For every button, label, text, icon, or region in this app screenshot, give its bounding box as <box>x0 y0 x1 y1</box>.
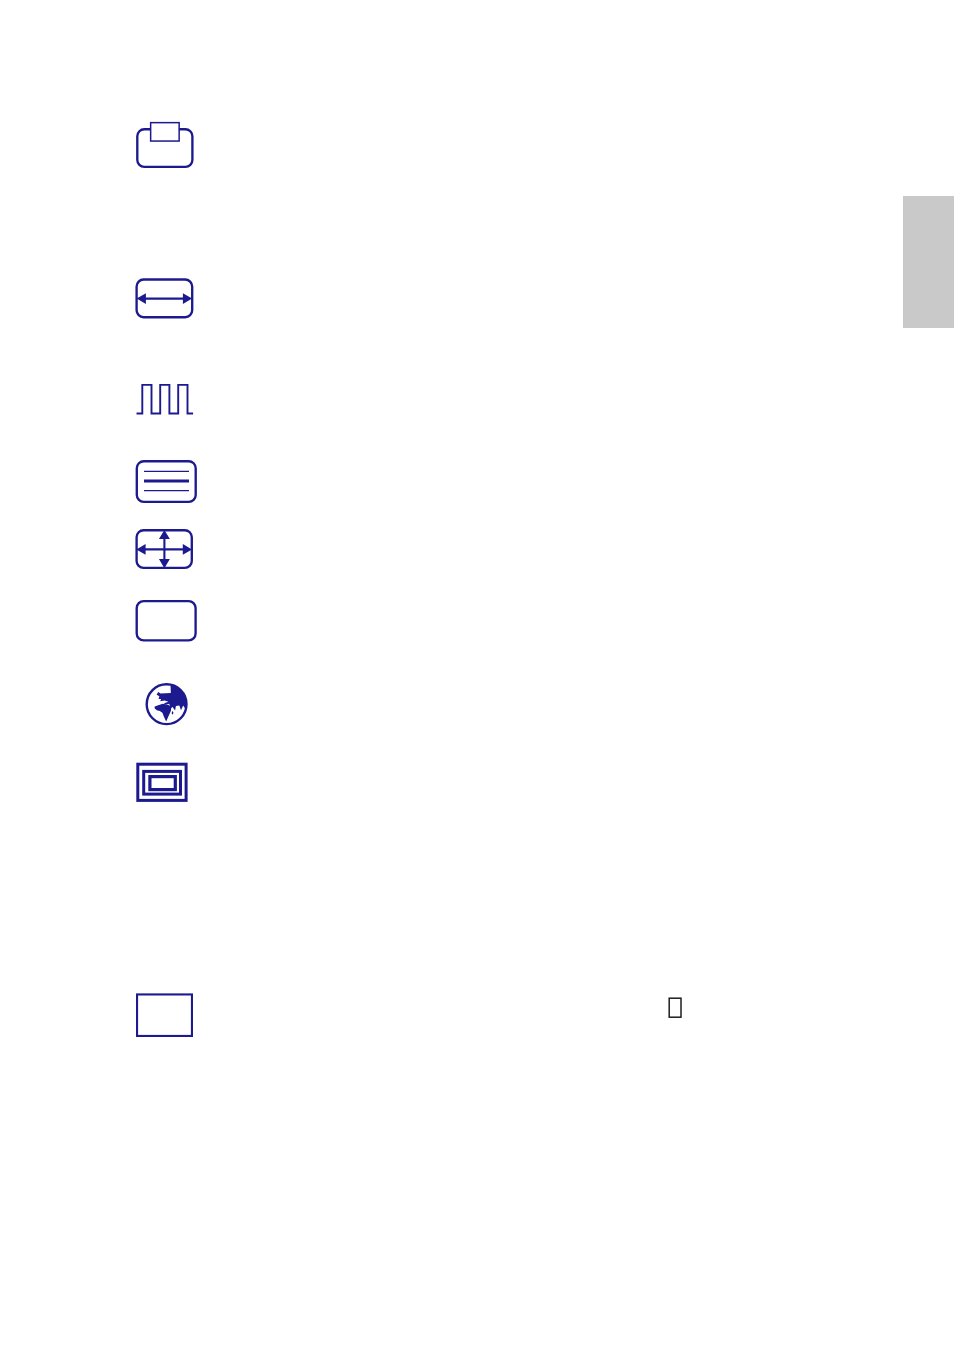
button[interactable]: Move <box>136 529 193 569</box>
button[interactable]: List lines <box>136 460 197 503</box>
button[interactable]: Tray <box>136 120 194 168</box>
button[interactable]: Globe <box>144 682 189 727</box>
button[interactable]: Nested frames <box>135 761 189 803</box>
button[interactable]: Empty box <box>135 992 194 1038</box>
button[interactable]: Blank panel <box>136 600 197 642</box>
button[interactable]: Resize horizontally <box>136 278 194 319</box>
button[interactable]: Pulse signal <box>135 383 194 415</box>
